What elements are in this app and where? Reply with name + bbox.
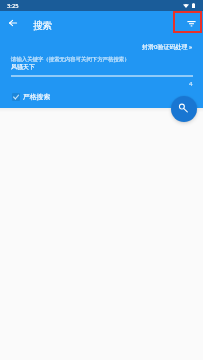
button[interactable]: Back [3, 13, 22, 32]
staticText: 请输入关键字（搜索无内容可关闭下方严格搜索） [11, 56, 130, 63]
staticText: 严格搜索 [23, 92, 51, 101]
staticText: 4 [189, 80, 193, 88]
button[interactable]: 封滑0验证码处理 » [142, 43, 193, 51]
button[interactable]: Filter [174, 12, 201, 32]
staticText: 3:25 [7, 2, 19, 10]
staticText: 风骚天下 [11, 63, 35, 71]
button[interactable]: 严格搜索 [12, 92, 51, 101]
staticText: 搜索 [33, 20, 53, 32]
button[interactable]: Search [171, 96, 197, 122]
